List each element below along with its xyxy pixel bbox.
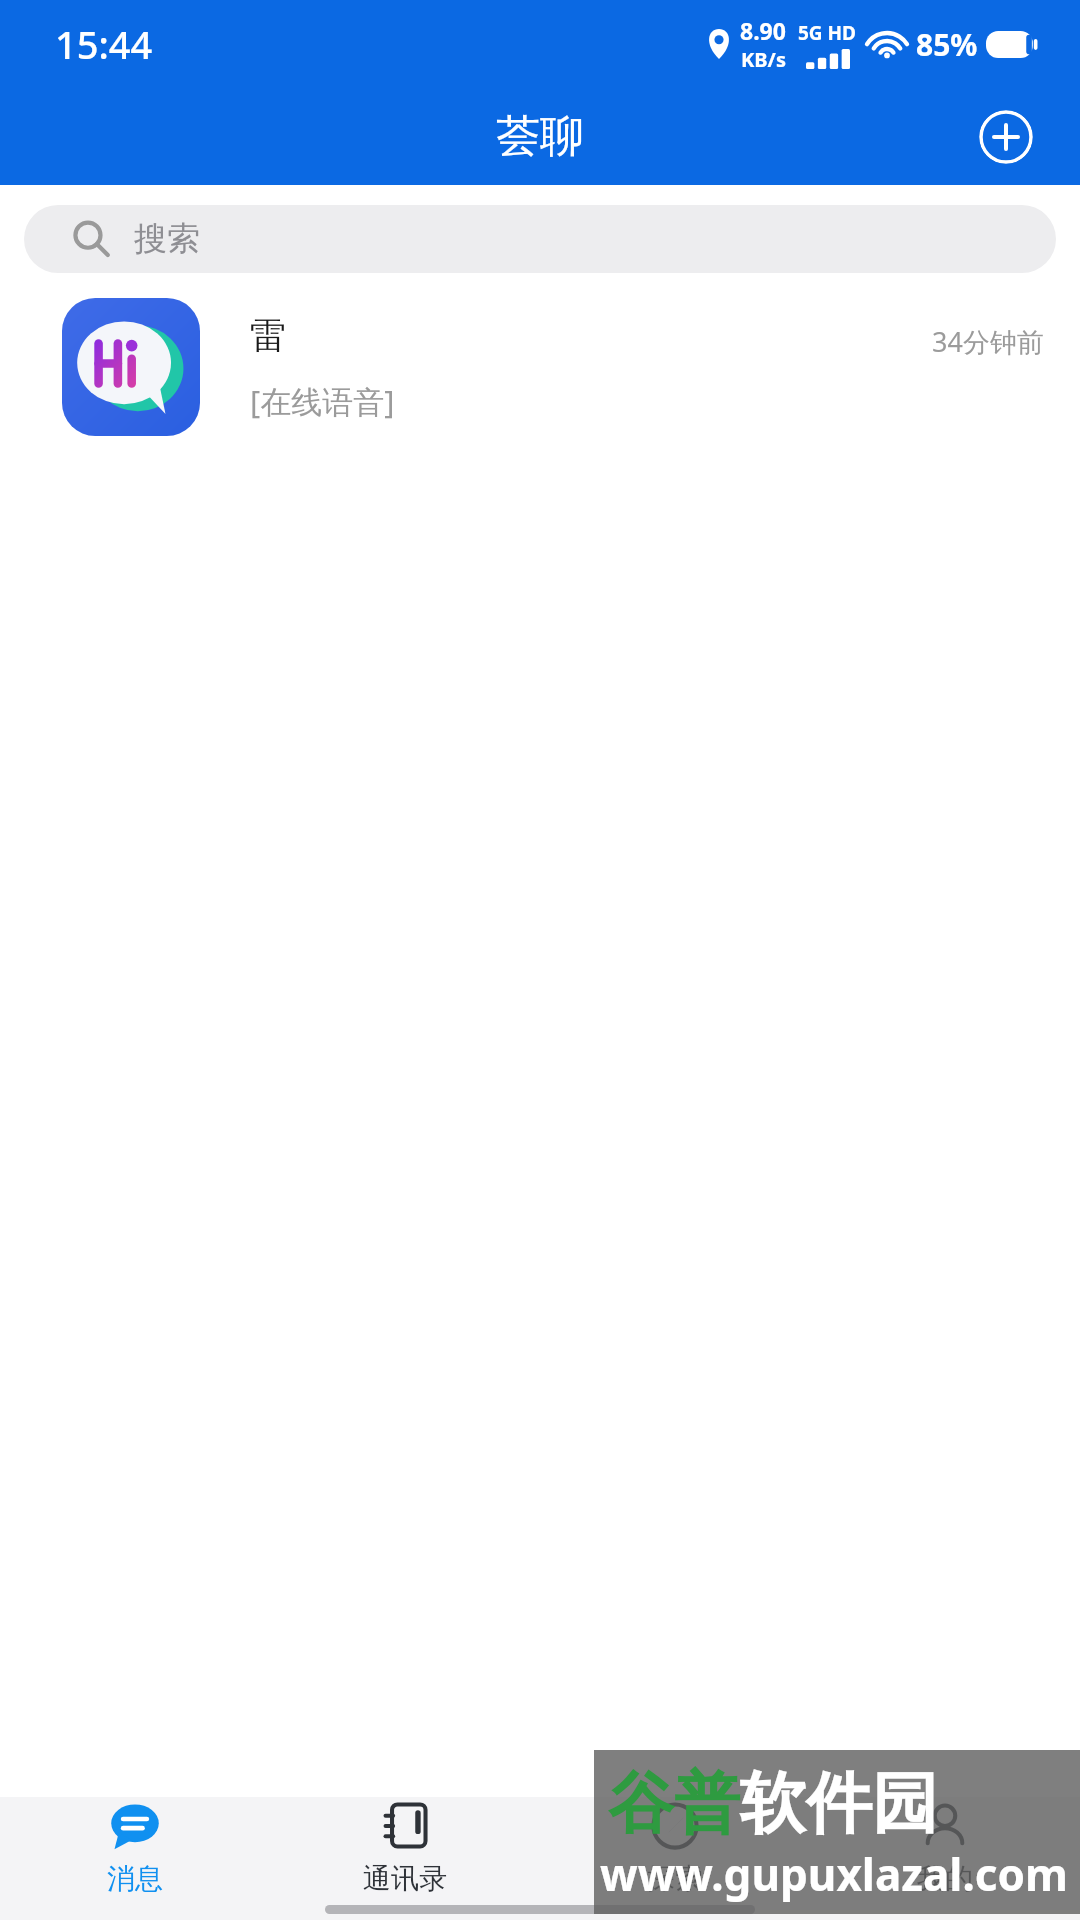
- staticText: 探索: [647, 1861, 703, 1896]
- staticText: 谷普: [608, 1762, 740, 1845]
- staticText: 15:44: [55, 18, 153, 70]
- button[interactable]: Add: [979, 110, 1033, 164]
- staticText: [在线语音]: [250, 380, 395, 422]
- button[interactable]: 消息: [0, 1797, 270, 1898]
- staticText: 软件园: [740, 1762, 938, 1845]
- staticText: 消息: [107, 1861, 163, 1896]
- button[interactable]: 通讯录: [270, 1797, 540, 1898]
- staticText: 荟聊: [496, 109, 584, 164]
- staticText: www.gupuxlazal.com: [600, 1844, 1068, 1904]
- staticText: 我的: [917, 1861, 973, 1896]
- button[interactable]: 搜索: [24, 205, 1056, 273]
- staticText: 34分钟前: [932, 323, 1044, 360]
- button[interactable]: 雷: [0, 292, 1080, 442]
- staticText: 通讯录: [363, 1861, 447, 1896]
- staticText: 搜索: [134, 218, 200, 260]
- staticText: 85%: [916, 24, 978, 65]
- staticText: KB/s: [741, 46, 786, 73]
- button[interactable]: 我的: [810, 1797, 1080, 1898]
- staticText: 雷: [250, 313, 286, 358]
- staticText: 8.90: [740, 15, 786, 46]
- staticText: 5G HD: [798, 20, 857, 46]
- button[interactable]: 探索: [540, 1797, 810, 1898]
